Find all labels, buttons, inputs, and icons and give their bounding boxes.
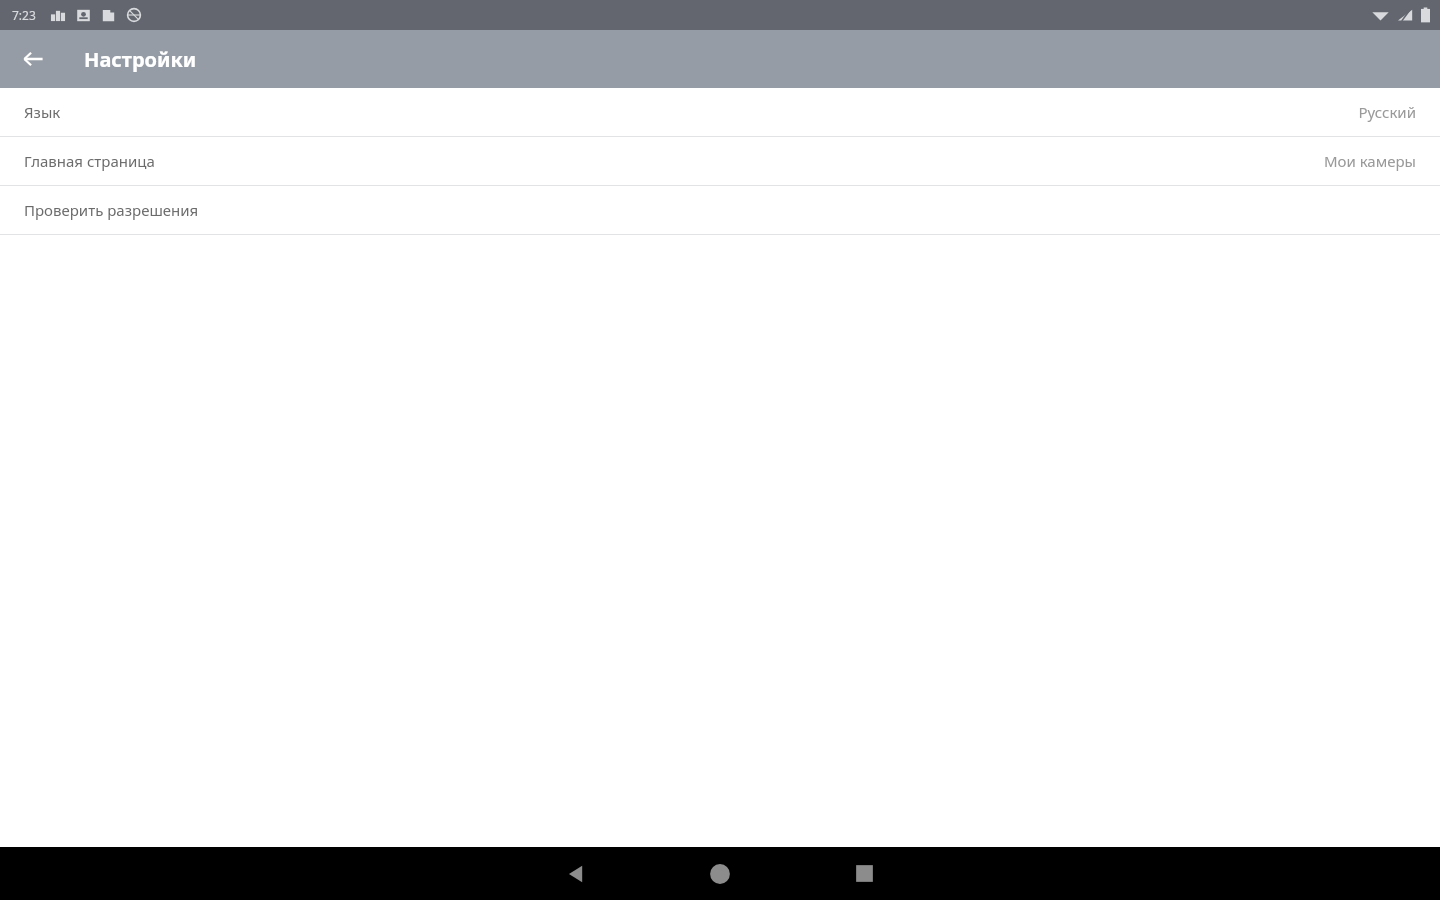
button[interactable]: Главная страница [0,137,1440,185]
button[interactable]: Проверить разрешения [0,186,1440,234]
staticText: Язык [24,102,61,122]
button[interactable]: Назад [546,847,606,900]
staticText: Мои камеры [1323,151,1416,171]
staticText: Русский [1358,102,1416,122]
staticText: Настройки [84,46,197,73]
staticText: Главная страница [24,151,155,171]
button[interactable]: Язык [0,88,1440,136]
button[interactable]: Главный экран [690,847,750,900]
staticText: Проверить разрешения [24,200,199,220]
button[interactable]: Недавние приложения [834,847,894,900]
button[interactable]: Назад [11,37,55,81]
staticText: 7:23 [12,7,36,23]
